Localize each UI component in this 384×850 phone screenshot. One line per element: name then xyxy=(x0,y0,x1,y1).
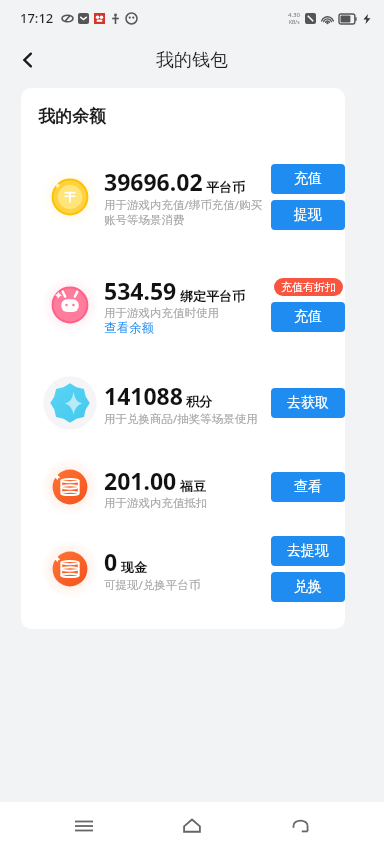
staticText: 积分 xyxy=(186,393,212,409)
staticText: 查看 xyxy=(294,478,322,496)
button[interactable]: Recent apps xyxy=(60,802,108,850)
button[interactable]: 查看 xyxy=(271,472,345,502)
button[interactable]: 充值有折扣 xyxy=(274,278,343,296)
staticText: 兑换 xyxy=(294,578,322,596)
staticText: 充值 xyxy=(294,308,322,326)
button[interactable]: 去获取 xyxy=(271,388,345,418)
staticText: 充值 xyxy=(294,170,322,188)
staticText: 17:12 xyxy=(20,9,54,27)
staticText: 201.00 xyxy=(104,465,177,496)
staticText: 充值有折扣 xyxy=(281,280,336,294)
staticText: KB/s xyxy=(289,19,300,26)
staticText: 平台币 xyxy=(206,179,245,195)
button[interactable]: Home xyxy=(168,802,216,850)
button[interactable]: Back xyxy=(276,802,324,850)
staticText: 提现 xyxy=(294,206,322,224)
staticText: 4.30 xyxy=(288,11,300,19)
staticText: 我的余额 xyxy=(38,106,106,127)
button[interactable]: 去提现 xyxy=(271,536,345,566)
staticText: 用于游戏内充值抵扣 xyxy=(104,496,208,510)
staticText: 用于游戏内充值时使用 xyxy=(104,306,219,320)
staticText: 绑定平台币 xyxy=(180,288,245,304)
staticText: 534.59 xyxy=(104,275,177,306)
staticText: 去获取 xyxy=(287,394,329,412)
staticText: 可提现/兑换平台币 xyxy=(104,577,201,593)
button[interactable]: 兑换 xyxy=(271,572,345,602)
staticText: 39696.02 xyxy=(104,166,203,197)
button[interactable]: 查看余额 xyxy=(104,320,154,336)
staticText: 0 xyxy=(104,546,118,577)
staticText: 用于兑换商品/抽奖等场景使用 xyxy=(104,411,258,427)
button[interactable]: 提现 xyxy=(271,200,345,230)
staticText: 用于游戏内充值/绑币充值/购买账号等场景消费 xyxy=(104,197,267,228)
staticText: 福豆 xyxy=(180,478,206,494)
staticText: 我的钱包 xyxy=(156,49,228,72)
staticText: 141088 xyxy=(104,380,183,411)
staticText: 现金 xyxy=(121,559,147,575)
button[interactable]: 充值 xyxy=(271,164,345,194)
button[interactable]: Back xyxy=(8,40,48,80)
button[interactable]: 充值 xyxy=(271,302,345,332)
staticText: 去提现 xyxy=(287,542,329,560)
